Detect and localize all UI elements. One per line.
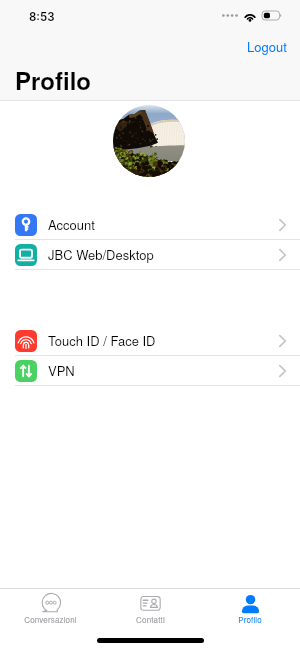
- staticText: VPN: [48, 361, 75, 380]
- button[interactable]: Account: [0, 210, 300, 239]
- button[interactable]: Contatti: [100, 589, 200, 633]
- staticText: Profilo: [238, 614, 262, 625]
- button[interactable]: VPN: [0, 356, 300, 385]
- button[interactable]: Logout: [243, 33, 291, 60]
- staticText: Account: [48, 215, 95, 234]
- staticText: Conversazioni: [24, 614, 77, 625]
- button[interactable]: Touch ID / Face ID: [0, 326, 300, 355]
- staticText: Touch ID / Face ID: [48, 331, 156, 350]
- button[interactable]: Profilo: [200, 589, 300, 633]
- button[interactable]: Conversazioni: [0, 589, 100, 633]
- staticText: JBC Web/Desktop: [48, 245, 154, 264]
- staticText: Contatti: [136, 614, 165, 625]
- button[interactable]: JBC Web/Desktop: [0, 240, 300, 269]
- staticText: 8:53: [29, 10, 55, 24]
- staticText: Profilo: [15, 63, 92, 97]
- button[interactable]: Profile photo: [113, 105, 185, 177]
- staticText: Logout: [247, 37, 287, 56]
